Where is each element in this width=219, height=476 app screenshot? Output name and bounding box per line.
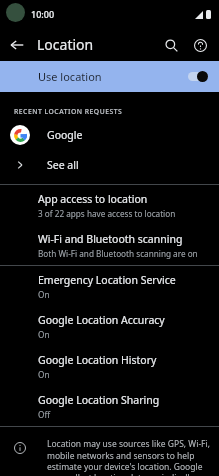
- button[interactable]: See all: [0, 150, 219, 180]
- staticText: Emergency Location Service: [38, 273, 176, 287]
- staticText: Location: [37, 35, 94, 54]
- button[interactable]: Google Location History: [0, 346, 219, 386]
- staticText: RECENT LOCATION REQUESTS: [14, 107, 123, 116]
- staticText: Google Location History: [38, 353, 157, 367]
- button[interactable]: Wi-Fi and Bluetooth scanning: [0, 225, 219, 265]
- button[interactable]: App access to location: [0, 185, 219, 225]
- button[interactable]: Google: [0, 120, 219, 150]
- staticText: See all: [47, 158, 79, 172]
- staticText: 3 of 22 apps have access to location: [38, 208, 176, 219]
- button[interactable]: Back: [0, 28, 33, 61]
- staticText: Location may use sources like GPS, Wi-Fi…: [47, 438, 211, 476]
- staticText: Wi-Fi and Bluetooth scanning: [38, 232, 183, 246]
- button[interactable]: Search: [155, 29, 187, 61]
- staticText: Google Location Sharing: [38, 393, 160, 407]
- button[interactable]: Emergency Location Service: [0, 266, 219, 306]
- staticText: Google: [47, 128, 83, 142]
- staticText: Off: [38, 409, 51, 420]
- button[interactable]: Help: [187, 29, 213, 61]
- staticText: 10:00: [31, 8, 55, 20]
- staticText: On: [38, 329, 50, 340]
- button[interactable]: Google Location Sharing: [0, 386, 219, 426]
- button[interactable]: Google Location Accuracy: [0, 306, 219, 346]
- staticText: On: [38, 289, 50, 300]
- staticText: App access to location: [38, 192, 148, 206]
- staticText: Google Location Accuracy: [38, 313, 165, 327]
- staticText: Both Wi-Fi and Bluetooth scanning are on: [38, 248, 198, 259]
- button[interactable]: Use location: [0, 61, 219, 92]
- staticText: On: [38, 369, 50, 380]
- staticText: Use location: [38, 69, 102, 84]
